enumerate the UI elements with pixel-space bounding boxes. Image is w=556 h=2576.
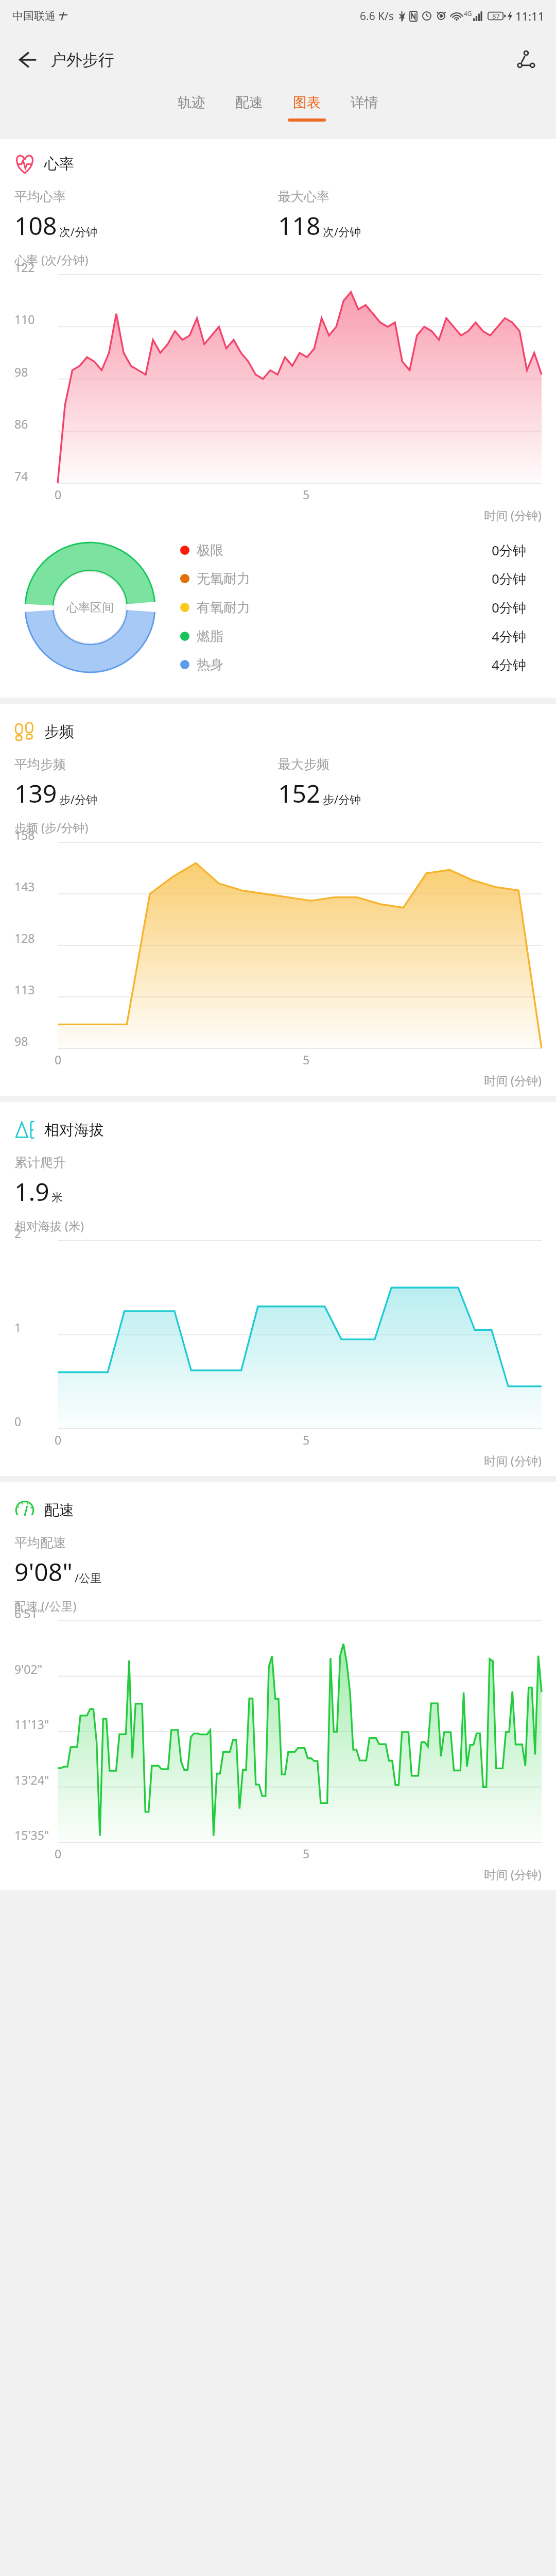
staticText: 4分钟 bbox=[492, 655, 526, 674]
staticText: 15'35" bbox=[14, 1827, 49, 1843]
staticText: 139 bbox=[14, 776, 57, 810]
staticText: 143 bbox=[14, 878, 35, 894]
staticText: 4分钟 bbox=[492, 627, 526, 646]
staticText: 110 bbox=[14, 311, 35, 327]
staticText: 0 bbox=[55, 1845, 62, 1861]
staticText: 中国联通 bbox=[12, 9, 56, 23]
staticText: 5 bbox=[303, 1432, 310, 1448]
staticText: 详情 bbox=[351, 94, 378, 111]
staticText: 152 bbox=[278, 776, 321, 810]
staticText: 配速 bbox=[235, 94, 263, 111]
staticText: 时间 (分钟) bbox=[484, 1866, 542, 1882]
button[interactable]: 热身 bbox=[180, 655, 526, 674]
staticText: 0 bbox=[55, 1432, 62, 1448]
staticText: 米 bbox=[51, 1191, 63, 1205]
staticText: 1 bbox=[14, 1319, 22, 1335]
staticText: 5 bbox=[303, 1845, 310, 1861]
button[interactable]: Back bbox=[11, 44, 43, 76]
button[interactable]: 无氧耐力 bbox=[180, 569, 526, 588]
staticText: 6.6 K/s bbox=[360, 9, 394, 24]
staticText: 74 bbox=[14, 468, 28, 484]
staticText: 0 bbox=[14, 1413, 22, 1429]
staticText: 次/分钟 bbox=[323, 224, 361, 239]
staticText: 122 bbox=[14, 259, 35, 275]
staticText: 4G bbox=[464, 9, 472, 18]
staticText: 心率 bbox=[44, 155, 74, 174]
staticText: 98 bbox=[14, 364, 28, 380]
staticText: 步频 (步/分钟) bbox=[14, 819, 89, 835]
staticText: 步/分钟 bbox=[59, 791, 98, 807]
staticText: 平均心率 bbox=[14, 189, 66, 205]
staticText: 次/分钟 bbox=[59, 224, 98, 239]
staticText: 5 bbox=[303, 486, 310, 502]
staticText: 0分钟 bbox=[492, 541, 526, 560]
staticText: 9'08" bbox=[14, 1555, 73, 1588]
staticText: 158 bbox=[14, 827, 35, 843]
staticText: 平均配速 bbox=[14, 1535, 66, 1551]
staticText: 1.9 bbox=[14, 1175, 49, 1208]
staticText: 累计爬升 bbox=[14, 1155, 66, 1171]
staticText: 0分钟 bbox=[492, 598, 526, 617]
staticText: 98 bbox=[14, 1033, 28, 1049]
staticText: 步/分钟 bbox=[323, 791, 361, 807]
staticText: 2 bbox=[14, 1225, 22, 1241]
staticText: 无氧耐力 bbox=[197, 570, 250, 587]
staticText: 有氧耐力 bbox=[197, 599, 250, 616]
staticText: 118 bbox=[278, 209, 321, 242]
staticText: 平均步频 bbox=[14, 756, 66, 772]
staticText: 最大步频 bbox=[278, 756, 329, 772]
staticText: 86 bbox=[14, 416, 28, 432]
staticText: 相对海拔 bbox=[44, 1121, 104, 1140]
button[interactable]: 详情 bbox=[336, 88, 393, 122]
staticText: 5 bbox=[303, 1052, 310, 1067]
staticText: 燃脂 bbox=[197, 628, 223, 645]
staticText: /公里 bbox=[75, 1570, 102, 1585]
staticText: 0 bbox=[55, 1052, 62, 1067]
staticText: 极限 bbox=[197, 542, 223, 559]
staticText: 配速 (/公里) bbox=[14, 1598, 77, 1614]
staticText: 热身 bbox=[197, 656, 223, 673]
staticText: 108 bbox=[14, 209, 57, 242]
staticText: 步频 bbox=[44, 722, 74, 741]
staticText: 相对海拔 (米) bbox=[14, 1217, 84, 1233]
staticText: 9'02" bbox=[14, 1661, 43, 1677]
button[interactable]: 轨迹 bbox=[163, 88, 220, 122]
staticText: 轨迹 bbox=[178, 94, 205, 111]
staticText: 时间 (分钟) bbox=[484, 1452, 542, 1468]
button[interactable]: 配速 bbox=[220, 88, 278, 122]
button[interactable]: 图表 bbox=[278, 88, 336, 122]
button[interactable]: Share bbox=[510, 43, 543, 76]
staticText: 6'51" bbox=[14, 1605, 43, 1621]
staticText: 0 bbox=[55, 486, 62, 502]
staticText: 图表 bbox=[293, 94, 321, 111]
staticText: 87 bbox=[492, 11, 500, 21]
staticText: 最大心率 bbox=[278, 189, 329, 205]
staticText: 11'13" bbox=[14, 1716, 49, 1732]
button[interactable]: 燃脂 bbox=[180, 627, 526, 646]
button[interactable]: 有氧耐力 bbox=[180, 598, 526, 617]
staticText: 时间 (分钟) bbox=[484, 507, 542, 523]
staticText: 11:11 bbox=[515, 8, 545, 24]
staticText: 户外步行 bbox=[50, 50, 114, 70]
staticText: 配速 bbox=[44, 1501, 74, 1520]
staticText: 心率区间 bbox=[66, 600, 114, 615]
staticText: 13'24" bbox=[14, 1772, 49, 1788]
staticText: 0分钟 bbox=[492, 569, 526, 588]
button[interactable]: 极限 bbox=[180, 541, 526, 560]
staticText: 128 bbox=[14, 930, 35, 946]
staticText: 113 bbox=[14, 981, 35, 997]
staticText: 时间 (分钟) bbox=[484, 1072, 542, 1088]
staticText: 心率 (次/分钟) bbox=[14, 251, 89, 267]
